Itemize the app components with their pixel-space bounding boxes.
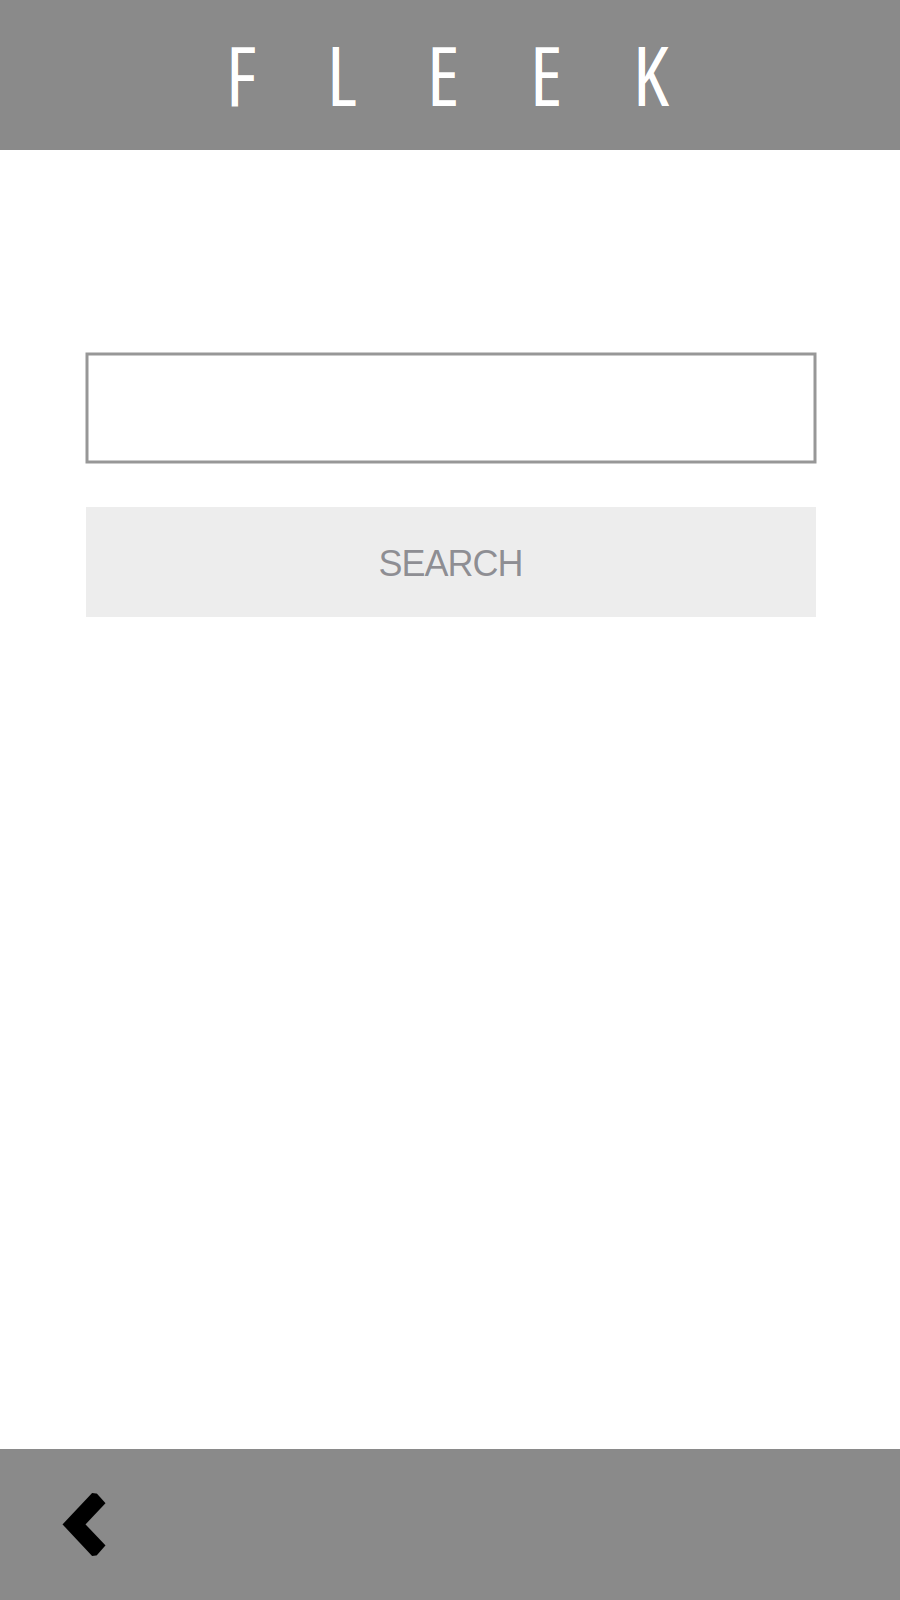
button[interactable]: Back: [0, 1449, 168, 1600]
button[interactable]: Search field: [87, 354, 815, 462]
staticText: FLEEK: [225, 18, 668, 130]
staticText: SEARCH: [378, 543, 523, 584]
button[interactable]: SEARCH: [86, 507, 816, 617]
